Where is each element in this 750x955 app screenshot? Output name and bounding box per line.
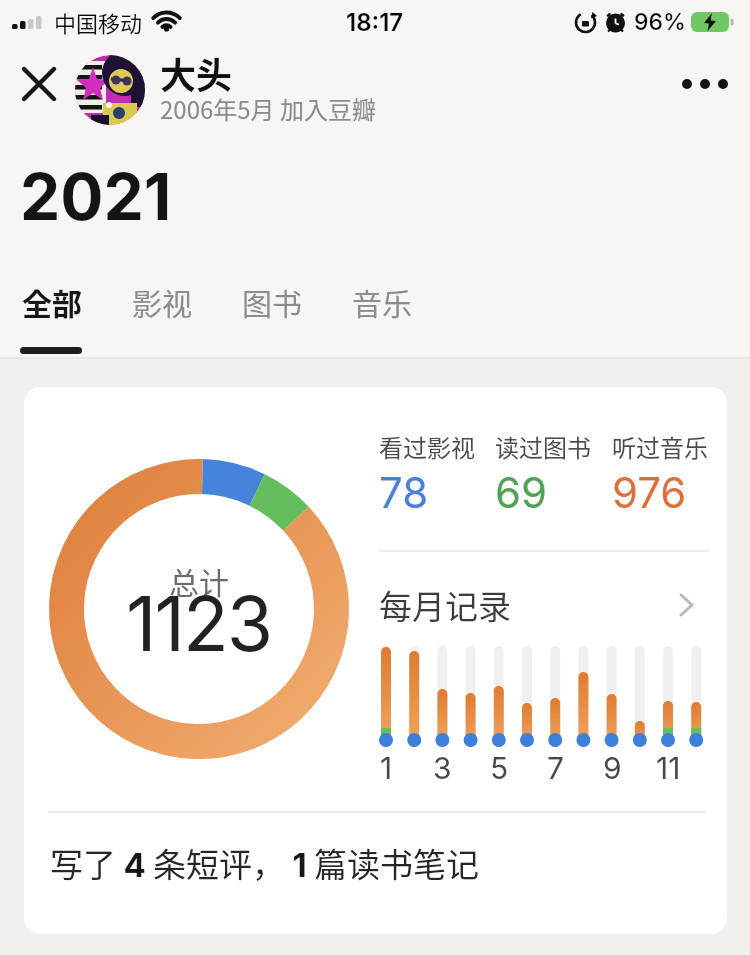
- staticText: 9: [603, 750, 622, 786]
- button[interactable]: 总计: [49, 459, 349, 759]
- staticText: 听过音乐: [612, 429, 708, 464]
- staticText: 中国移动: [54, 6, 143, 38]
- button[interactable]: [75, 55, 145, 125]
- staticText: 78: [379, 467, 429, 518]
- staticText: 每月记录: [379, 581, 511, 629]
- staticText: 96%: [634, 8, 686, 36]
- staticText: 音乐: [352, 280, 412, 323]
- staticText: 总计: [169, 559, 229, 602]
- staticText: 2021: [20, 158, 172, 235]
- staticText: 1123: [126, 578, 272, 669]
- button[interactable]: 每月记录: [379, 581, 695, 629]
- button[interactable]: 影视: [132, 280, 192, 323]
- staticText: 18:17: [346, 8, 404, 37]
- staticText: 11: [656, 750, 681, 786]
- button[interactable]: [16, 61, 62, 107]
- staticText: 976: [612, 467, 687, 518]
- staticText: 7: [547, 750, 564, 786]
- staticText: 读过图书: [495, 429, 591, 464]
- staticText: 2006年5月 加入豆瓣: [160, 91, 376, 126]
- staticText: 看过影视: [379, 429, 475, 464]
- staticText: 全部: [22, 280, 82, 323]
- staticText: 大头: [160, 47, 233, 99]
- button[interactable]: 全部: [22, 280, 82, 323]
- staticText: 写了 4 条短评， 1 篇读书笔记: [50, 839, 480, 887]
- button[interactable]: 音乐: [352, 280, 412, 323]
- button[interactable]: 图书: [242, 280, 302, 323]
- button[interactable]: 总计: [24, 387, 727, 934]
- button[interactable]: [682, 79, 728, 89]
- staticText: 3: [433, 750, 452, 786]
- staticText: 5: [490, 750, 509, 786]
- staticText: 69: [495, 467, 548, 518]
- staticText: 影视: [132, 280, 192, 323]
- staticText: 图书: [242, 280, 302, 323]
- staticText: 1: [380, 750, 393, 786]
